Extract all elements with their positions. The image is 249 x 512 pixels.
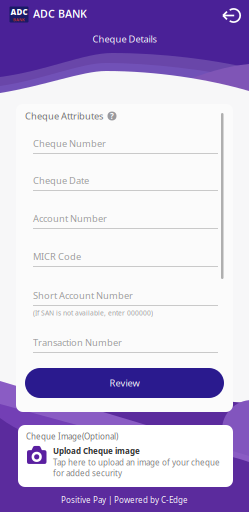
staticText: ADC	[10, 6, 27, 17]
staticText: MICR Code	[33, 250, 81, 263]
staticText: ADC BANK	[33, 6, 87, 21]
button[interactable]: Log out	[220, 6, 243, 25]
staticText: Upload Cheque image	[53, 446, 140, 456]
staticText: (If SAN is not available, enter 000000)	[33, 309, 153, 317]
staticText: Positive Pay | Powered by C-Edge	[61, 495, 188, 505]
staticText: Tap here to upload an image of your cheq…	[53, 457, 220, 478]
staticText: Cheque Number	[33, 137, 106, 150]
staticText: Cheque Details	[92, 33, 156, 45]
staticText: Cheque Attributes	[25, 110, 103, 122]
staticText: ?	[110, 111, 114, 121]
button[interactable]: Help about cheque attributes	[107, 111, 117, 121]
staticText: Account Number	[33, 212, 107, 225]
button[interactable]: Review	[25, 368, 224, 398]
staticText: Cheque Date	[33, 174, 89, 187]
staticText: Review	[109, 377, 139, 389]
button[interactable]: Upload Cheque image	[27, 445, 230, 479]
staticText: Transaction Number	[33, 336, 122, 349]
staticText: Cheque Image(Optional)	[26, 431, 118, 442]
staticText: BANK	[13, 17, 25, 22]
staticText: Short Account Number	[33, 289, 133, 302]
